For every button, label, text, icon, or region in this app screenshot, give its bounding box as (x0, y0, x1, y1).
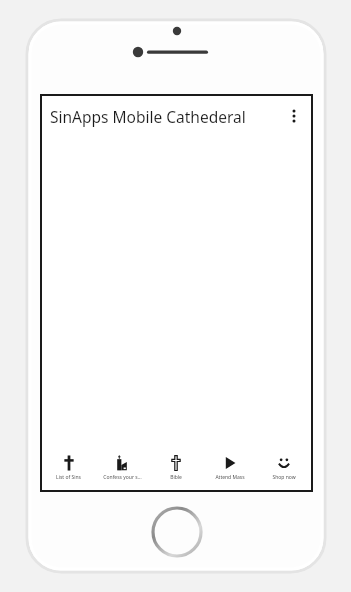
staticText: List of Sins (56, 474, 81, 481)
staticText: Shop now (272, 474, 296, 481)
button[interactable]: List of Sins (42, 446, 95, 490)
button[interactable]: Attend Mass (203, 446, 257, 490)
staticText: Confess your s… (103, 474, 142, 481)
button[interactable]: Confess your s… (95, 446, 149, 490)
button[interactable]: More options (283, 105, 305, 127)
button[interactable]: Bible (149, 446, 203, 490)
staticText: Bible (170, 474, 182, 481)
staticText: SinApps Mobile Cathederal (50, 106, 283, 127)
button[interactable]: Home (150, 505, 204, 559)
button[interactable]: Shop now (257, 446, 311, 490)
staticText: Attend Mass (215, 474, 245, 481)
